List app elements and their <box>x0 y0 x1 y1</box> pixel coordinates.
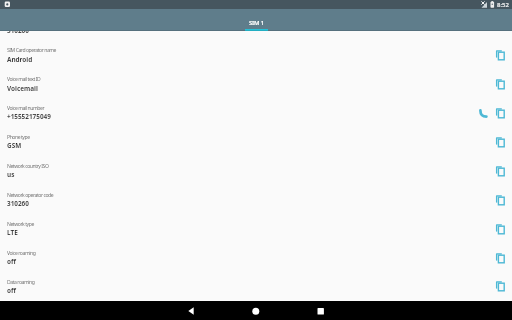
staticText: GSM <box>7 141 22 150</box>
button[interactable] <box>495 108 506 119</box>
staticText: 310260 <box>7 199 29 208</box>
button[interactable] <box>495 281 506 292</box>
button[interactable]: SIM 1 <box>224 9 288 31</box>
staticText: 8:52 <box>497 1 509 9</box>
staticText: LTE <box>7 228 18 237</box>
button[interactable] <box>478 108 489 119</box>
staticText: Network type <box>7 221 34 228</box>
button[interactable] <box>495 224 506 235</box>
staticText: Voice mail number <box>7 105 45 112</box>
staticText: SIM 1 <box>249 19 264 27</box>
button[interactable] <box>495 79 506 90</box>
staticText: Data roaming <box>7 279 35 286</box>
staticText: Voicemail <box>7 84 38 93</box>
button[interactable] <box>184 304 199 319</box>
button[interactable] <box>495 253 506 264</box>
staticText: Network country ISO <box>7 163 49 170</box>
staticText: off <box>7 286 16 295</box>
button[interactable] <box>248 304 263 319</box>
button[interactable] <box>495 137 506 148</box>
staticText: Android <box>7 55 33 64</box>
staticText: Phone type <box>7 134 30 141</box>
staticText: Voice roaming <box>7 250 36 257</box>
staticText: 310260 <box>7 31 29 35</box>
button[interactable] <box>495 50 506 61</box>
staticText: off <box>7 257 16 266</box>
staticText: +15552175049 <box>7 112 51 121</box>
staticText: Network operator code <box>7 192 54 199</box>
staticText: SIM Card operator name <box>7 47 57 54</box>
button[interactable] <box>313 304 328 319</box>
staticText: us <box>7 170 15 179</box>
button[interactable] <box>495 166 506 177</box>
staticText: Voice mail text ID <box>7 76 41 83</box>
button[interactable] <box>495 195 506 206</box>
